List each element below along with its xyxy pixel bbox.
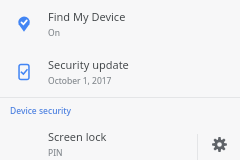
staticText: October 1, 2017 [48, 75, 112, 87]
button[interactable]: Find My Device [0, 0, 240, 48]
staticText: On [48, 27, 60, 39]
staticText: Security update [48, 57, 129, 72]
staticText: Device security [10, 105, 72, 117]
button[interactable]: Screen lock settings [198, 129, 240, 160]
staticText: Screen lock [48, 129, 107, 144]
staticText: Find My Device [48, 9, 126, 24]
button[interactable]: Security update [0, 48, 240, 96]
staticText: PIN [48, 147, 63, 159]
button[interactable]: Screen lock [0, 129, 197, 160]
